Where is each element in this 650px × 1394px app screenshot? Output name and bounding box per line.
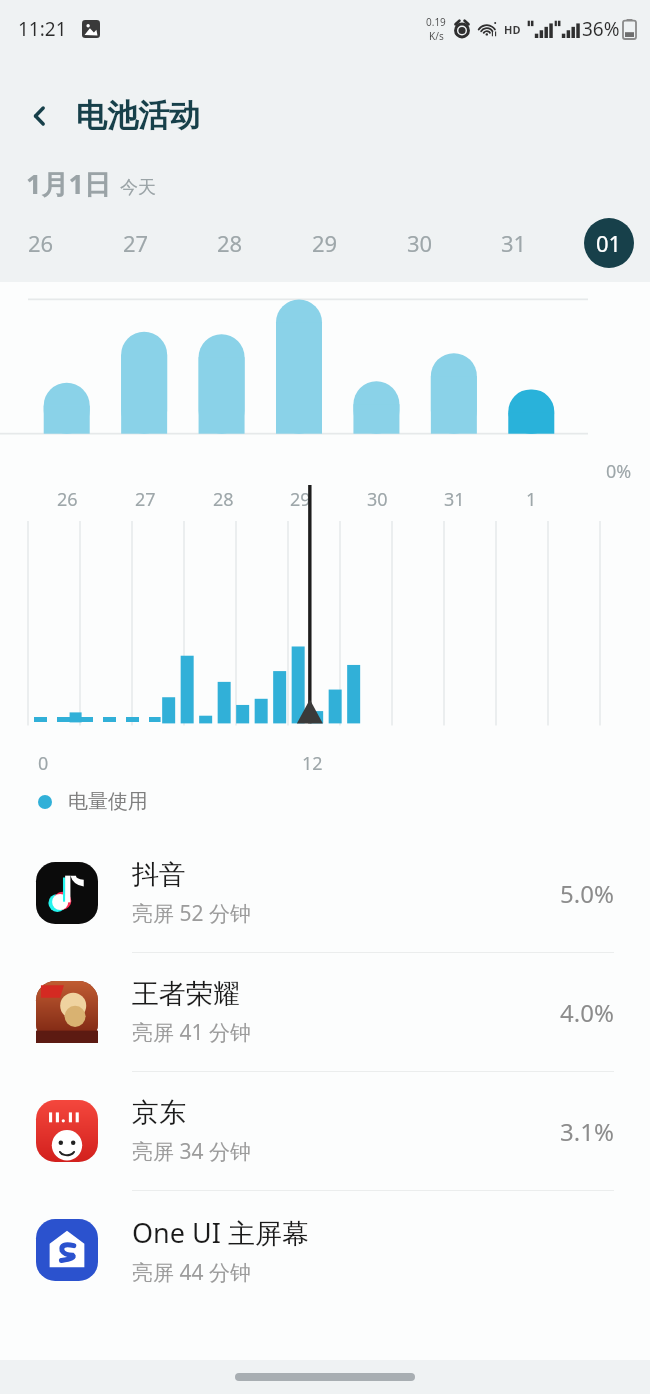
staticText: 5.0% (560, 877, 614, 910)
button[interactable]: 抖音 (0, 834, 650, 953)
staticText: 0 (38, 751, 49, 776)
staticText: 29 (290, 487, 311, 512)
staticText: 28 (217, 228, 243, 258)
staticText: HD (504, 22, 521, 37)
button[interactable]: 28 (205, 218, 255, 268)
staticText: 27 (135, 487, 156, 512)
staticText: 11:21 (18, 16, 67, 42)
staticText: 30 (407, 228, 433, 258)
staticText: 30 (367, 487, 388, 512)
button[interactable]: 27 (111, 218, 161, 268)
staticText: One UI 主屏幕 (132, 1214, 309, 1251)
button[interactable]: 29 (300, 218, 350, 268)
other: Back (24, 100, 56, 132)
button[interactable]: 京东 (0, 1072, 650, 1191)
staticText: 3.1% (560, 1115, 614, 1148)
staticText: 27 (123, 228, 149, 258)
staticText: 电量使用 (68, 789, 148, 814)
staticText: 31 (444, 487, 465, 512)
button[interactable]: 01 (584, 218, 634, 268)
button[interactable]: 31 (489, 218, 539, 268)
staticText: 26 (28, 228, 54, 258)
button[interactable]: 王者荣耀 (0, 953, 650, 1072)
staticText: 今天 (120, 176, 156, 199)
staticText: 12 (302, 751, 323, 776)
staticText: 亮屏 44 分钟 (132, 1258, 251, 1287)
staticText: 亮屏 41 分钟 (132, 1018, 251, 1047)
staticText: 亮屏 34 分钟 (132, 1137, 251, 1166)
staticText: 31 (501, 228, 527, 258)
staticText: 26 (57, 487, 78, 512)
staticText: 0.19 (426, 15, 446, 29)
staticText: 01 (596, 228, 622, 258)
staticText: 亮屏 52 分钟 (132, 899, 251, 928)
staticText: 1 (526, 487, 537, 512)
staticText: 京东 (132, 1096, 186, 1130)
staticText: 28 (213, 487, 234, 512)
staticText: 抖音 (132, 858, 186, 892)
staticText: 29 (312, 228, 338, 258)
button[interactable]: 26 (16, 218, 66, 268)
button[interactable]: One UI 主屏幕 (0, 1191, 650, 1309)
button[interactable]: 30 (395, 218, 445, 268)
button[interactable]: Back (0, 96, 650, 135)
staticText: 1月1日 (26, 165, 111, 202)
staticText: 36% (582, 16, 620, 42)
staticText: 4.0% (560, 996, 614, 1029)
staticText: 王者荣耀 (132, 977, 240, 1011)
staticText: 电池活动 (76, 96, 200, 135)
staticText: 0% (606, 459, 632, 484)
staticText: K/s (429, 29, 444, 43)
